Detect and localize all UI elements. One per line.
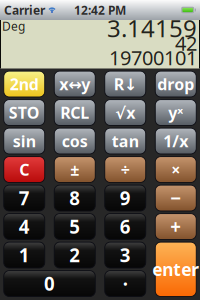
staticText: STO — [9, 102, 40, 123]
button[interactable]: RCL — [54, 100, 95, 125]
button[interactable]: 3 — [105, 242, 146, 268]
staticText: C — [19, 159, 29, 180]
staticText: − — [170, 186, 181, 210]
staticText: 4 — [19, 214, 30, 239]
staticText: tan — [112, 130, 139, 152]
staticText: 7 — [19, 186, 30, 210]
button[interactable]: yˣ — [155, 100, 196, 125]
staticText: Carrier — [4, 2, 45, 18]
staticText: 2nd — [10, 73, 39, 95]
button[interactable]: STO — [4, 100, 45, 125]
button[interactable]: drop — [155, 71, 196, 97]
button[interactable]: 8 — [54, 185, 95, 211]
staticText: 1 — [19, 243, 30, 267]
staticText: · — [123, 271, 128, 296]
button[interactable]: C — [4, 157, 45, 182]
button[interactable]: 1/x — [155, 128, 196, 154]
button[interactable]: 2 — [54, 242, 95, 268]
staticText: 19700101 — [109, 44, 197, 71]
staticText: RCL — [60, 102, 89, 123]
staticText: ÷ — [121, 159, 130, 180]
button[interactable]: R↓ — [105, 71, 146, 97]
button[interactable]: √x — [105, 100, 146, 125]
button[interactable]: cos — [54, 128, 95, 154]
staticText: cos — [62, 130, 88, 152]
button[interactable]: x↔y — [54, 71, 95, 97]
button[interactable]: tan — [105, 128, 146, 154]
button[interactable]: · — [105, 271, 146, 296]
staticText: + — [170, 214, 181, 239]
button[interactable]: 7 — [4, 185, 45, 211]
button[interactable]: ÷ — [105, 157, 146, 182]
staticText: drop — [157, 73, 194, 95]
staticText: enter — [152, 258, 199, 281]
staticText: sin — [13, 130, 36, 152]
button[interactable]: 2nd — [4, 71, 45, 97]
button[interactable]: 9 — [105, 185, 146, 211]
staticText: 1/x — [163, 130, 188, 152]
staticText: 6 — [120, 214, 131, 239]
staticText: 2 — [69, 243, 80, 267]
button[interactable]: 0 — [4, 271, 95, 296]
staticText: Deg — [2, 18, 25, 34]
button[interactable]: × — [155, 157, 196, 182]
staticText: x↔y — [59, 73, 90, 95]
staticText: 5 — [69, 214, 80, 239]
button[interactable]: 5 — [54, 214, 95, 239]
button[interactable]: sin — [4, 128, 45, 154]
staticText: 3.14159 — [107, 12, 197, 44]
staticText: × — [171, 159, 180, 180]
button[interactable]: 4 — [4, 214, 45, 239]
staticText: 8 — [69, 186, 80, 210]
staticText: 0 — [44, 271, 55, 296]
button[interactable]: 6 — [105, 214, 146, 239]
button[interactable]: 1 — [4, 242, 45, 268]
button[interactable]: ± — [54, 157, 95, 182]
staticText: √x — [115, 102, 135, 123]
button[interactable]: + — [155, 214, 196, 239]
staticText: 3 — [120, 243, 131, 267]
staticText: 42 — [175, 30, 197, 56]
button[interactable]: − — [155, 185, 196, 211]
button[interactable]: enter — [155, 242, 196, 296]
staticText: 12:42 PM — [74, 2, 126, 18]
staticText: 9 — [120, 186, 131, 210]
staticText: R↓ — [114, 73, 137, 95]
staticText: yˣ — [168, 102, 183, 123]
staticText: ± — [70, 159, 79, 180]
